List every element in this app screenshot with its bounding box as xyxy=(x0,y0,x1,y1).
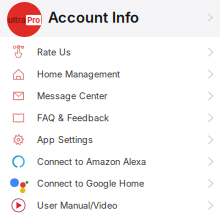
staticText: App Settings xyxy=(37,134,93,145)
button[interactable]: ultra xyxy=(0,0,220,37)
staticText: FAQ & Feedback xyxy=(37,112,109,123)
button[interactable]: User Manual/Video xyxy=(0,194,220,216)
button[interactable]: Connect to Google Home xyxy=(0,172,220,194)
staticText: Pro xyxy=(27,15,40,25)
staticText: Rate Us xyxy=(37,47,71,58)
button[interactable]: Rate Us xyxy=(0,41,220,63)
staticText: Home Management xyxy=(37,69,120,80)
staticText: Connect to Amazon Alexa xyxy=(37,156,146,167)
staticText: Account Info xyxy=(48,9,139,26)
staticText: User Manual/Video xyxy=(37,200,117,211)
staticText: Message Center xyxy=(37,90,107,101)
button[interactable]: Message Center xyxy=(0,85,220,107)
button[interactable]: Home Management xyxy=(0,63,220,85)
staticText: Connect to Google Home xyxy=(37,178,144,189)
staticText: ultra xyxy=(8,15,26,25)
button[interactable]: FAQ & Feedback xyxy=(0,107,220,129)
button[interactable]: App Settings xyxy=(0,129,220,151)
button[interactable]: Connect to Amazon Alexa xyxy=(0,151,220,173)
